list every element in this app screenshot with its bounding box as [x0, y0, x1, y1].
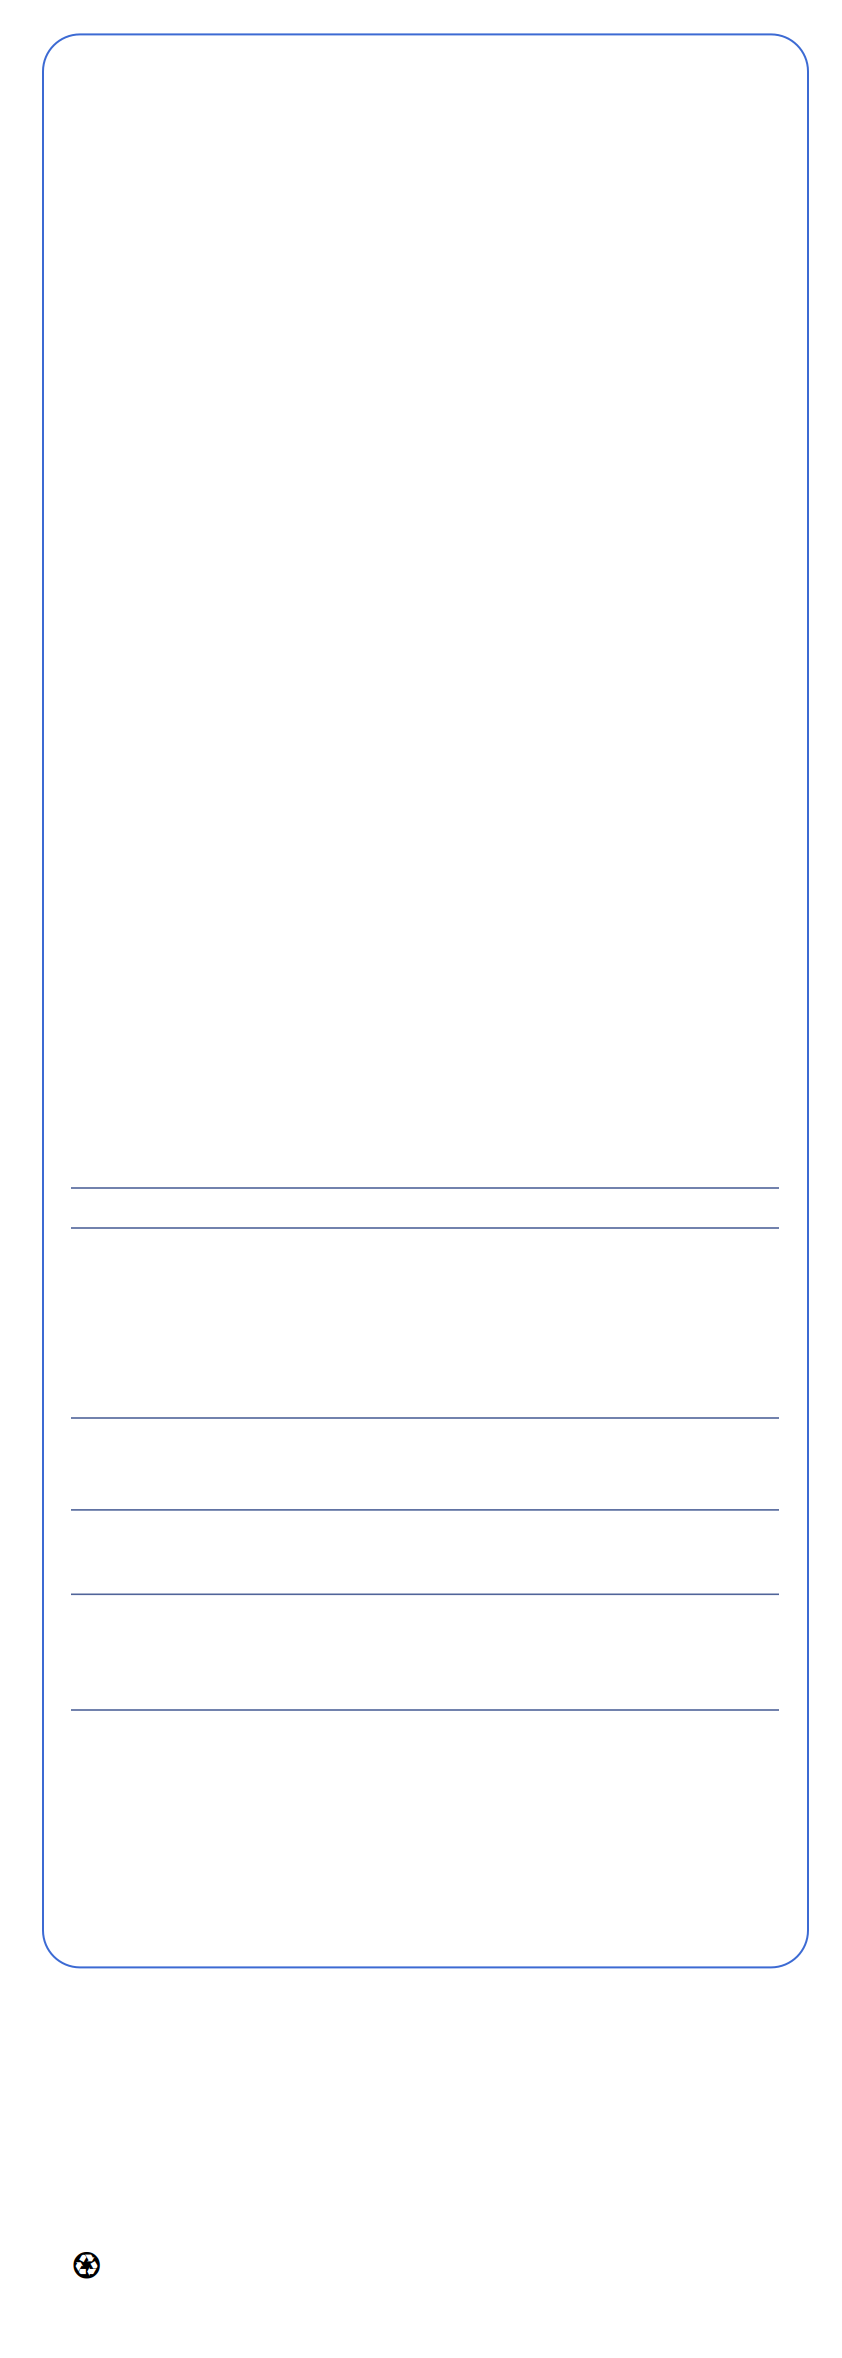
button[interactable]: Item 1 [71, 1189, 779, 1229]
button[interactable]: Item 2 [71, 1229, 779, 1419]
button[interactable]: Item 5 [71, 1595, 779, 1711]
staticText: ♼ [70, 2246, 102, 2287]
button[interactable]: Recycle [70, 2246, 102, 2287]
button[interactable]: Item 3 [71, 1419, 779, 1511]
button[interactable]: Item 4 [71, 1511, 779, 1595]
